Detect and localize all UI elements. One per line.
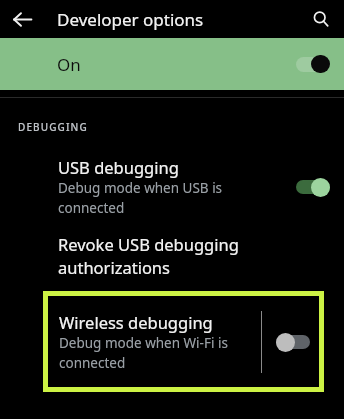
staticText: DEBUGGING <box>18 120 88 134</box>
staticText: Revoke USB debugging authorizations <box>58 233 239 279</box>
staticText: USB debugging <box>58 156 179 178</box>
button[interactable]: Wireless debugging <box>43 291 324 392</box>
button[interactable]: USB debugging <box>0 156 344 217</box>
button[interactable]: Revoke USB debugging authorizations <box>0 233 344 279</box>
button[interactable]: USB debugging toggle <box>296 176 330 198</box>
staticText: Developer options <box>57 8 204 31</box>
staticText: Debug mode when USB is connected <box>58 179 223 217</box>
button[interactable]: Search <box>306 4 336 34</box>
staticText: Debug mode when Wi-Fi is connected <box>59 334 228 372</box>
staticText: Wireless debugging <box>59 311 213 333</box>
button[interactable]: On <box>0 38 344 90</box>
button[interactable]: Wireless debugging toggle <box>276 331 310 353</box>
staticText: On <box>57 53 81 76</box>
button[interactable]: Back <box>6 3 38 35</box>
